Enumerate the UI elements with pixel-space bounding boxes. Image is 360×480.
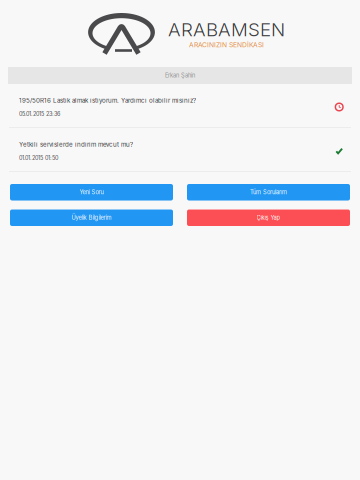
- staticText: Yetkili servislerde indirim mevcut mu?: [19, 141, 133, 148]
- button[interactable]: Çıkış Yap: [187, 209, 350, 226]
- staticText: ARABAMSEN: [168, 18, 285, 41]
- staticText: Üyelik Bilgilerim: [71, 214, 111, 221]
- staticText: 195/50R16 Lastik almak istiyorum. Yardım…: [19, 97, 196, 104]
- staticText: Tüm Sorularım: [250, 189, 287, 196]
- staticText: Çıkış Yap: [256, 214, 280, 221]
- staticText: 01.01.2015 01:50: [19, 155, 58, 161]
- staticText: Yeni Soru: [79, 189, 103, 196]
- button[interactable]: Yetkili servislerde indirim mevcut mu?: [0, 128, 360, 171]
- staticText: Erkan Şahin: [165, 72, 195, 79]
- staticText: ARACINIZIN SENDİKASI: [189, 41, 264, 49]
- staticText: 05.01.2015 23:36: [19, 111, 60, 117]
- button[interactable]: Üyelik Bilgilerim: [10, 209, 173, 226]
- button[interactable]: Yeni Soru: [10, 184, 173, 200]
- button[interactable]: 195/50R16 Lastik almak istiyorum. Yardım…: [0, 84, 360, 127]
- button[interactable]: Tüm Sorularım: [187, 184, 350, 200]
